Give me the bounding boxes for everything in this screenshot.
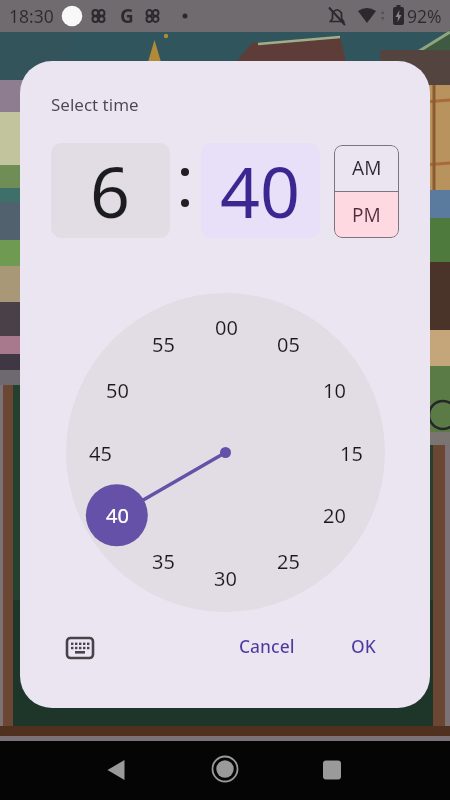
button[interactable]: 55: [141, 331, 185, 357]
button[interactable]: 15: [329, 440, 373, 466]
staticText: 18:30: [9, 4, 54, 28]
button[interactable]: Cancel: [227, 626, 307, 666]
staticText: 15: [340, 440, 363, 466]
button[interactable]: [210, 754, 240, 784]
staticText: OK: [351, 634, 376, 658]
staticText: 6: [90, 143, 131, 238]
staticText: AM: [352, 155, 382, 181]
button[interactable]: 30: [203, 565, 247, 591]
staticText: 10: [323, 377, 346, 403]
button[interactable]: [60, 628, 100, 668]
button[interactable]: 35: [141, 548, 185, 574]
button[interactable]: [317, 755, 347, 785]
staticText: 45: [89, 440, 112, 466]
staticText: 50: [106, 377, 129, 403]
button[interactable]: 40: [95, 502, 139, 528]
staticText: 05: [277, 331, 300, 357]
staticText: 20: [323, 502, 346, 528]
button[interactable]: 45: [78, 440, 122, 466]
staticText: 92%: [407, 4, 442, 28]
staticText: Select time: [51, 93, 139, 116]
button[interactable]: OK: [333, 626, 393, 666]
button[interactable]: AM: [334, 145, 399, 191]
button[interactable]: PM: [334, 192, 399, 238]
staticText: PM: [352, 202, 381, 228]
button[interactable]: 6: [51, 143, 170, 238]
button[interactable]: 50: [95, 377, 139, 403]
button[interactable]: 40: [201, 143, 320, 238]
staticText: 00: [215, 314, 238, 340]
button[interactable]: 25: [266, 548, 310, 574]
staticText: 40: [220, 143, 301, 238]
button[interactable]: 00: [204, 314, 248, 340]
staticText: 40: [106, 502, 129, 528]
button[interactable]: 05: [266, 331, 310, 357]
staticText: 55: [152, 331, 175, 357]
button[interactable]: 20: [312, 502, 356, 528]
staticText: 35: [152, 548, 175, 574]
staticText: Cancel: [239, 634, 295, 658]
button[interactable]: 10: [312, 377, 356, 403]
button[interactable]: [103, 755, 133, 785]
staticText: G: [120, 3, 134, 29]
staticText: 30: [214, 565, 237, 591]
staticText: 25: [277, 548, 300, 574]
